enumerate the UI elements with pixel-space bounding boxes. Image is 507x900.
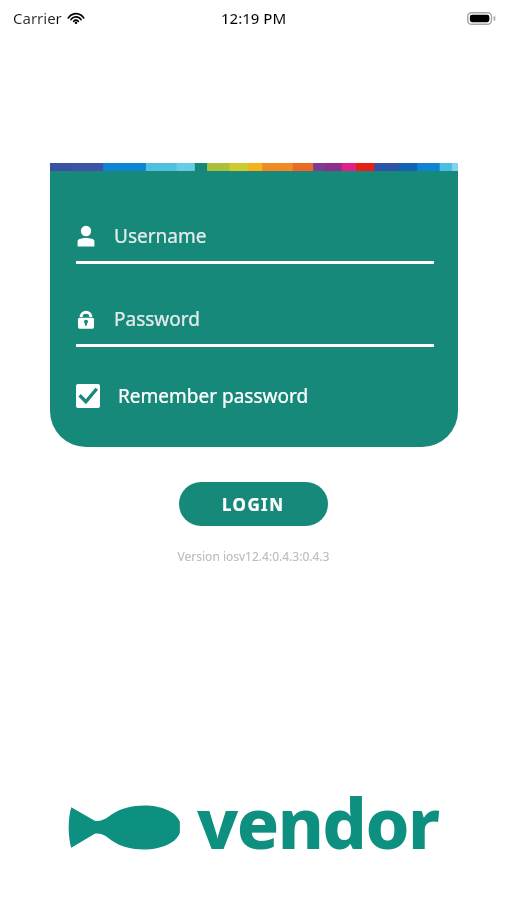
button[interactable]: Username (76, 223, 434, 264)
staticText: Version iosv12.4:0.4.3:0.4.3 (0, 548, 507, 564)
staticText: Remember password (118, 383, 309, 409)
button[interactable]: LOGIN (179, 482, 328, 526)
staticText: 12:19 PM (221, 8, 287, 28)
staticText: Username (114, 223, 207, 249)
staticText: Password (114, 306, 200, 332)
other: Password (76, 308, 96, 331)
button[interactable]: Remember password (76, 383, 434, 409)
button[interactable]: Password (76, 306, 434, 347)
staticText: vendor (197, 774, 439, 869)
other: Username (76, 225, 96, 248)
staticText: LOGIN (222, 493, 285, 516)
staticText: Carrier (13, 8, 62, 28)
